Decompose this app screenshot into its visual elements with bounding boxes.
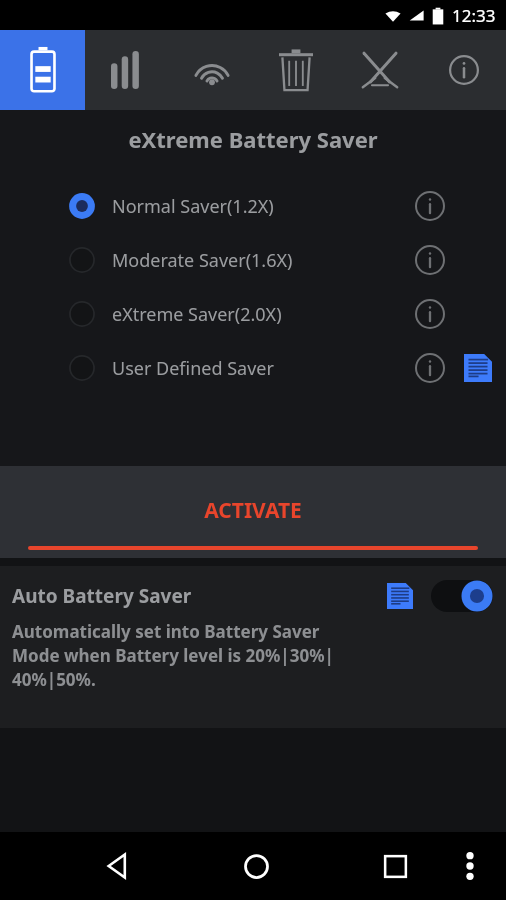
button[interactable]: ACTIVATE [0,466,506,558]
button[interactable]: Normal Saver(1.2X) [0,186,506,226]
button[interactable]: Auto Battery Saver toggle [430,579,494,613]
staticText: Auto Battery Saver [12,583,382,609]
staticText: 12:33 [452,4,496,27]
button[interactable]: Wifi tab [170,30,254,110]
staticText: ACTIVATE [0,496,506,525]
button[interactable]: Home [229,839,283,893]
button[interactable]: Info about User Defined Saver [410,348,450,388]
staticText: eXtreme Saver(2.0X) [112,302,410,327]
button[interactable]: User Defined Saver [0,348,506,388]
button[interactable]: Back [90,839,144,893]
staticText: eXtreme Battery Saver [0,124,506,154]
button[interactable]: Battery saver tab [0,30,85,110]
button[interactable]: Statistics tab [85,30,170,110]
button[interactable]: Auto saver settings document [382,578,418,614]
button[interactable]: Information tab [422,30,506,110]
staticText: Normal Saver(1.2X) [112,194,410,219]
button[interactable]: More options [448,844,492,888]
button[interactable]: Recent apps [368,839,422,893]
button[interactable]: Moderate Saver(1.6X) [0,240,506,280]
button[interactable]: Clean tab [254,30,338,110]
button[interactable]: Edit user defined saver [458,348,498,388]
staticText: User Defined Saver [112,356,410,381]
button[interactable]: Kill apps tab [338,30,422,110]
button[interactable]: Info about eXtreme Saver(2.0X) [410,294,450,334]
button[interactable]: eXtreme Saver(2.0X) [0,294,506,334]
staticText: Moderate Saver(1.6X) [112,248,410,273]
button[interactable]: Info about Normal Saver(1.2X) [410,186,450,226]
button[interactable]: Info about Moderate Saver(1.6X) [410,240,450,280]
staticText: Automatically set into Battery Saver Mod… [12,620,334,691]
